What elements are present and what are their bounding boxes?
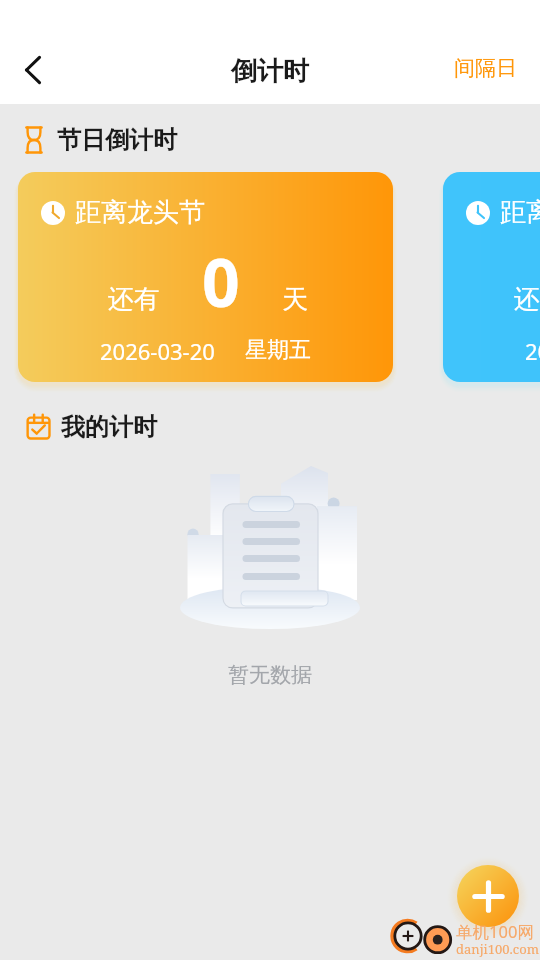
staticText: 2026-04-05 <box>525 336 540 366</box>
staticText: 2026-03-20 <box>100 336 215 366</box>
button[interactable]: 距离龙头节 <box>18 172 393 382</box>
staticText: 单机100网 <box>456 920 534 943</box>
staticText: 节日倒计时 <box>57 125 177 155</box>
staticText: 0 <box>202 236 240 326</box>
staticText: 距离龙头节 <box>75 196 205 229</box>
staticText: danji100.com <box>456 940 539 958</box>
button[interactable]: 间隔日 <box>431 44 540 92</box>
staticText: 星期五 <box>245 336 311 364</box>
staticText: 还有 <box>108 283 160 316</box>
staticText: 暂无数据 <box>228 662 312 688</box>
staticText: 还有 <box>514 283 540 316</box>
staticText: 倒计时 <box>231 55 309 88</box>
button[interactable]: 距离清明节 <box>443 172 540 382</box>
staticText: 天 <box>282 283 308 316</box>
button[interactable]: Add countdown <box>449 857 527 935</box>
staticText: 距离清明节 <box>500 196 540 229</box>
staticText: 我的计时 <box>61 412 157 442</box>
staticText: 间隔日 <box>454 55 517 81</box>
button[interactable]: Back <box>9 46 57 94</box>
